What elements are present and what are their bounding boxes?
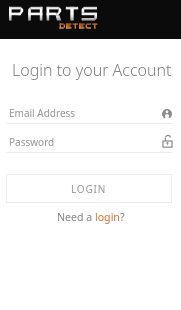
- staticText: Email Address: [9, 106, 76, 120]
- button[interactable]: Account: [162, 109, 172, 119]
- button[interactable]: Need a login?: [57, 210, 125, 224]
- staticText: LOGIN: [71, 182, 107, 196]
- staticText: Login to your Account: [12, 59, 172, 81]
- button[interactable]: LOGIN: [6, 174, 172, 203]
- button[interactable]: Show password: [162, 134, 173, 148]
- staticText: Password: [9, 135, 55, 149]
